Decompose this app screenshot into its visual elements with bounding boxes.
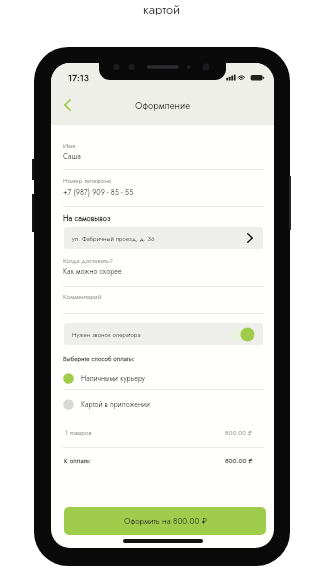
- button[interactable]: Оформить на 800.00 ₽: [64, 507, 266, 535]
- button[interactable]: Back: [55, 93, 79, 117]
- staticText: Номер телефона: [63, 176, 112, 186]
- button[interactable]: [51, 289, 274, 313]
- staticText: 800.00 ₽: [225, 456, 253, 466]
- staticText: На самовывоз: [63, 213, 111, 224]
- staticText: ул. Фабричный проезд, д. 36: [72, 234, 247, 243]
- staticText: Имя: [63, 141, 76, 151]
- staticText: Когда доставить?: [63, 256, 113, 266]
- staticText: Как можно скорее: [63, 266, 122, 277]
- button[interactable]: [51, 253, 274, 286]
- button[interactable]: ул. Фабричный проезд, д. 36: [64, 227, 263, 249]
- staticText: Оформить на 800.00 ₽: [124, 515, 207, 527]
- staticText: картой: [143, 0, 181, 15]
- staticText: 17:13: [68, 71, 89, 84]
- staticText: Наличными курьеру: [81, 373, 146, 383]
- staticText: Нужен звонок оператора: [72, 330, 230, 339]
- staticText: 1 товаров: [65, 428, 225, 437]
- staticText: Картой в приложении: [81, 399, 150, 409]
- staticText: Выберите способ оплаты:: [63, 354, 135, 363]
- button[interactable]: [51, 133, 274, 169]
- button[interactable]: Картой в приложении: [63, 393, 262, 415]
- staticText: Саша: [63, 151, 81, 162]
- button[interactable]: Нужен звонок оператора: [64, 323, 263, 345]
- button[interactable]: Наличными курьеру: [63, 367, 262, 389]
- staticText: +7 (987) 909 - 85 - 55: [63, 187, 134, 198]
- staticText: К оплате:: [64, 456, 225, 466]
- button[interactable]: [51, 171, 274, 206]
- staticText: Оформление: [51, 99, 274, 113]
- staticText: 800.00 ₽: [225, 428, 253, 437]
- staticText: Комментарий: [63, 292, 102, 302]
